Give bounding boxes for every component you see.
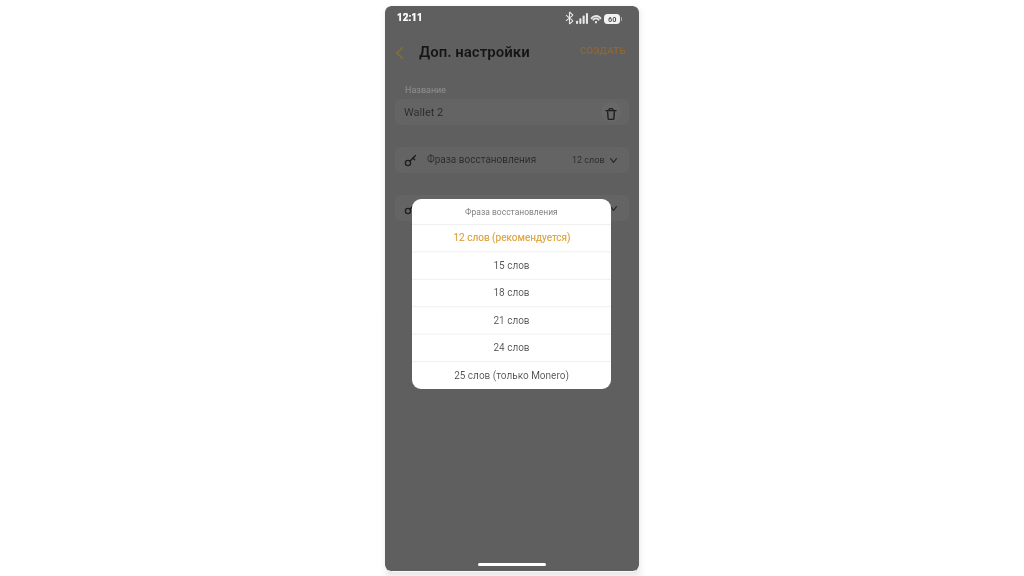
staticText: 18 слов	[493, 287, 530, 299]
staticText: Фраза восстановления	[427, 202, 537, 214]
button[interactable]: Back	[388, 37, 410, 69]
button[interactable]: Фраза восстановления	[395, 147, 629, 173]
staticText: 12 слов (рекомендуется)	[453, 232, 571, 244]
staticText: 15 слов	[493, 260, 530, 272]
button[interactable]: 21 слов	[412, 307, 611, 334]
staticText: Фраза восстановления	[427, 154, 537, 166]
staticText: 21 слов	[493, 315, 530, 327]
staticText: Wallet 2	[404, 106, 444, 119]
staticText: 60	[608, 15, 617, 24]
staticText: 12:11	[397, 12, 423, 24]
button[interactable]: 25 слов (только Monero)	[412, 362, 611, 389]
button[interactable]: 12 слов (рекомендуется)	[412, 224, 611, 251]
staticText: Фраза восстановления	[465, 207, 558, 217]
button[interactable]: 15 слов	[412, 252, 611, 279]
staticText: Название	[405, 85, 447, 96]
staticText: СОЗДАТЬ	[580, 45, 626, 56]
button[interactable]: Delete wallet	[601, 102, 621, 122]
button[interactable]: Фраза восстановления	[395, 195, 629, 221]
button[interactable]: СОЗДАТЬ	[575, 40, 631, 61]
button[interactable]: 18 слов	[412, 279, 611, 306]
staticText: Доп. настройки	[419, 43, 530, 61]
button[interactable]: 24 слов	[412, 334, 611, 361]
staticText: 24 слов	[493, 342, 530, 354]
staticText: 12 слов	[572, 155, 605, 166]
button[interactable]: Wallet 2	[395, 99, 629, 125]
staticText: 25 слов (только Monero)	[454, 370, 569, 382]
